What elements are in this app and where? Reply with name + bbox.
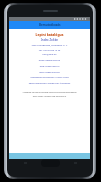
button[interactable]: Bemutatkozás xyxy=(9,21,90,29)
button[interactable]: Index Zoltán xyxy=(9,38,90,42)
button[interactable]: http://hobi.zolti.hu xyxy=(9,65,90,68)
button[interactable]: Lepini katalógus xyxy=(9,32,90,37)
button[interactable]: Tel: +36 30 929 13 45 xyxy=(9,49,90,52)
button[interactable]: alatt állnak. Minden jog fenntartva. xyxy=(9,95,90,98)
button[interactable]: http://lepke.zolti.hu xyxy=(9,71,90,74)
button[interactable]: https://www.zolti.hu xyxy=(9,59,90,62)
button[interactable]: A weblap tartalmát képező alkotások szer… xyxy=(9,91,90,94)
button[interactable]: info@zolti.hu xyxy=(9,53,90,56)
staticText: Bemutatkozás xyxy=(39,23,61,27)
button[interactable]: Egyéb alkalmazás a Google Play Áruházban xyxy=(9,82,90,85)
button[interactable]: 4400 Nyíregyháza, Pétervásár u. 7. xyxy=(9,44,90,47)
button[interactable]: Adatvédelmi nyilatkozat / Privacy Policy xyxy=(9,76,90,79)
